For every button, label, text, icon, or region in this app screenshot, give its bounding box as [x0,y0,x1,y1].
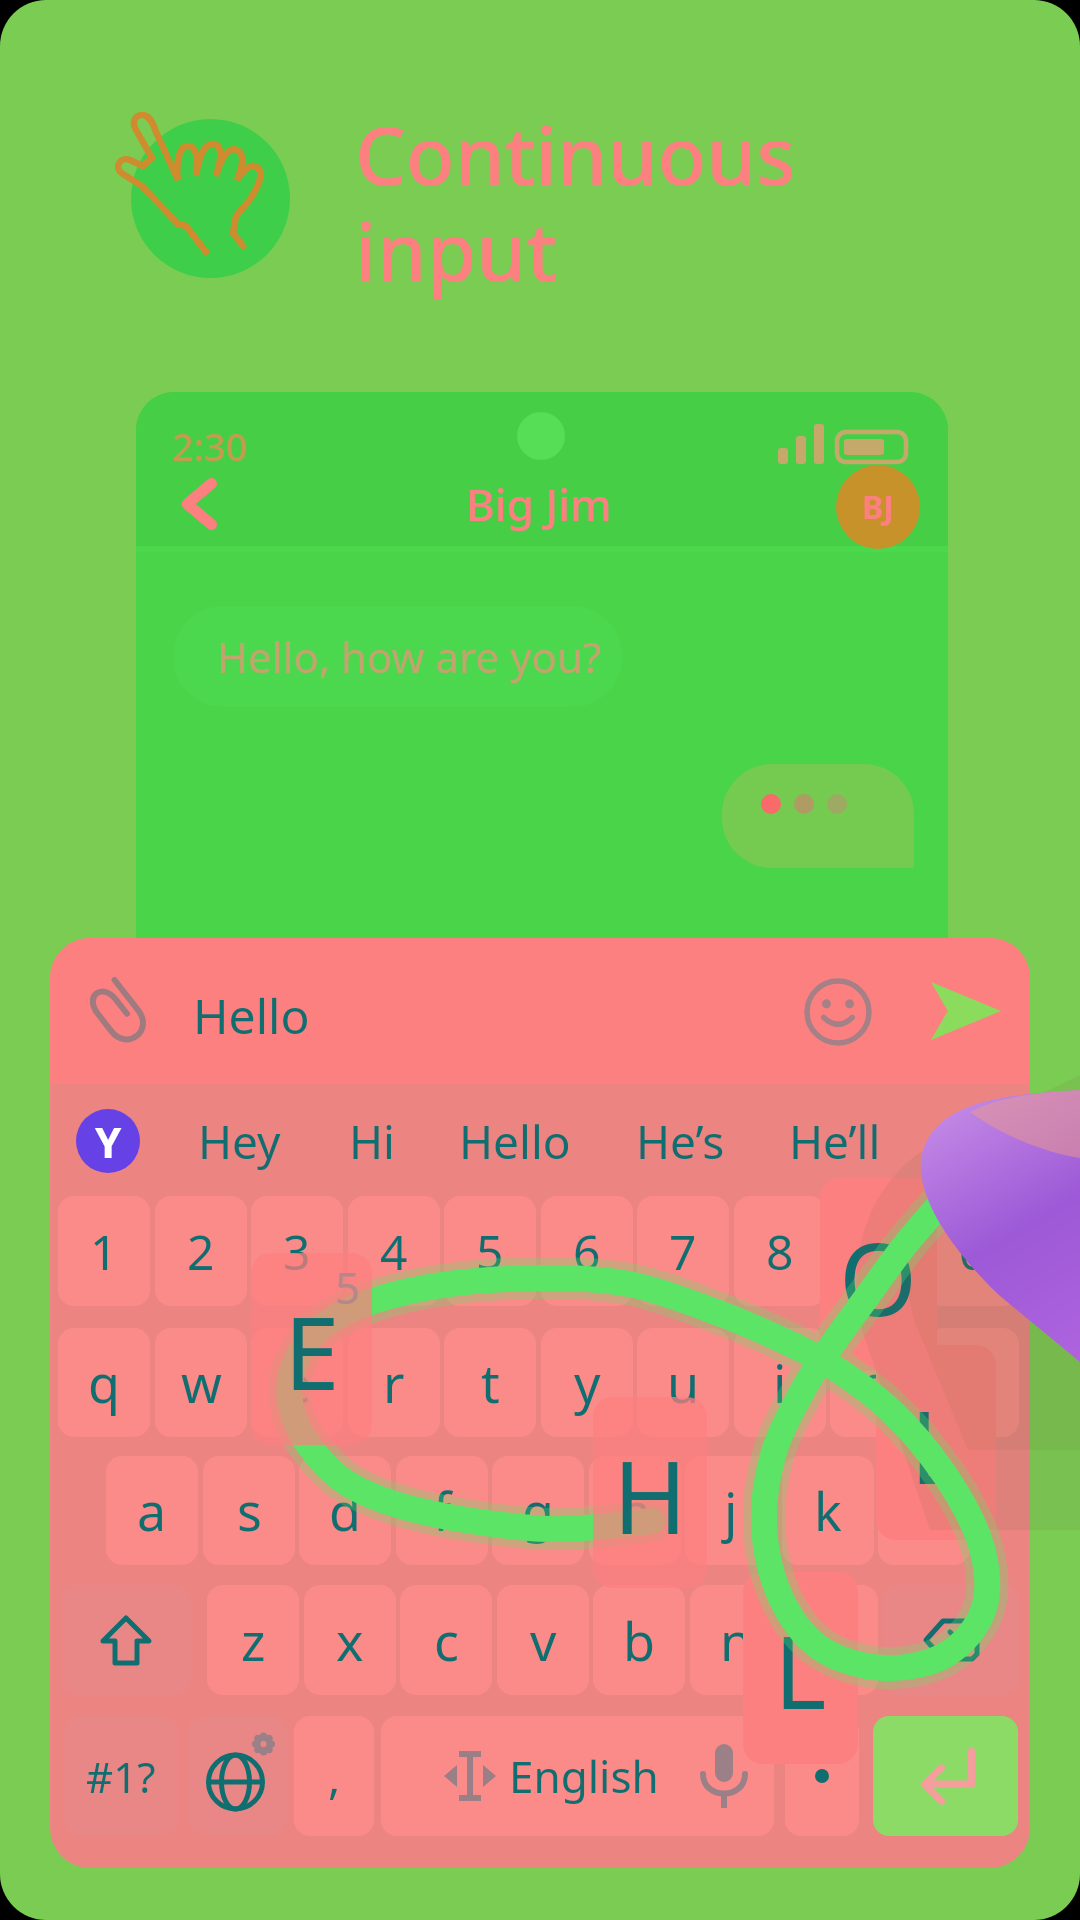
staticText: BJ [862,485,894,529]
staticText: Hello [459,1110,571,1173]
staticText: y [574,1347,601,1418]
staticText: 4 [380,1219,408,1284]
button[interactable]: n [690,1585,782,1695]
staticText: e [282,1347,312,1418]
staticText: 6 [573,1219,601,1284]
staticText: Big Jim [466,474,612,534]
staticText: 3 [283,1219,311,1284]
button[interactable]: Hello [435,1092,595,1190]
staticText: j [724,1475,738,1546]
staticText: o [860,1347,892,1418]
button[interactable]: u [637,1328,729,1437]
button[interactable]: y [541,1328,633,1437]
button[interactable]: BJ [836,465,920,549]
button[interactable]: 7 [637,1196,729,1306]
button[interactable]: Hi [292,1092,452,1190]
button[interactable]: , [294,1716,374,1836]
button[interactable]: 4 [348,1196,440,1306]
staticText: a [137,1475,167,1546]
button[interactable]: 0 [927,1196,1019,1306]
staticText: m [808,1605,857,1676]
staticText: 9 [862,1219,890,1284]
staticText: h [619,1475,652,1546]
staticText: 1 [90,1219,118,1284]
staticText: 5 [476,1219,504,1284]
button[interactable]: h [589,1456,681,1565]
button[interactable]: He’s [600,1092,760,1190]
button[interactable]: l [878,1456,970,1565]
button[interactable]: s [203,1456,295,1565]
button[interactable]: d [299,1456,391,1565]
staticText: 5 [335,1257,361,1317]
button[interactable]: w [155,1328,247,1437]
button[interactable]: Enter [873,1716,1018,1836]
button[interactable]: p [927,1328,1019,1437]
staticText: v [530,1605,557,1676]
button[interactable]: #1? [64,1716,178,1836]
button[interactable]: o [830,1328,922,1437]
staticText: w [181,1347,222,1418]
button[interactable]: Hey [159,1092,319,1190]
staticText: g [522,1475,554,1546]
staticText: 2:30 [172,420,248,472]
staticText: Continuous input [355,99,796,305]
button[interactable]: English [381,1716,774,1836]
staticText: 7 [669,1219,697,1284]
button[interactable]: He’ll [755,1092,915,1190]
button[interactable]: m [786,1585,878,1695]
staticText: 8 [766,1219,794,1284]
staticText: English [509,1746,659,1806]
button[interactable]: e [251,1328,343,1437]
staticText: l [917,1475,931,1546]
button[interactable]: c [400,1585,492,1695]
button[interactable]: z [207,1585,299,1695]
button[interactable]: 8 [734,1196,826,1306]
staticText: 2 [187,1219,215,1284]
staticText: Hello, how are you? [217,628,602,685]
staticText: Hey [198,1110,281,1173]
button[interactable]: Emoji [804,978,872,1046]
staticText: He’s [636,1110,725,1173]
staticText: s [237,1475,262,1546]
button[interactable]: 5 [444,1196,536,1306]
staticText: i [773,1347,787,1418]
staticText: Hi [349,1110,395,1173]
button[interactable]: x [304,1585,396,1695]
button[interactable]: 2 [155,1196,247,1306]
button[interactable]: t [444,1328,536,1437]
staticText: b [623,1605,655,1676]
button[interactable]: g [492,1456,584,1565]
button[interactable]: j [685,1456,777,1565]
button[interactable]: Shift [61,1585,191,1695]
staticText: E [284,1283,340,1419]
staticText: , [328,1745,341,1808]
button[interactable]: v [497,1585,589,1695]
button[interactable]: Backspace [882,1585,1020,1695]
staticText: O [839,1209,918,1345]
button[interactable]: q [58,1328,150,1437]
staticText: 0 [959,1219,987,1284]
button[interactable]: Back [168,472,232,536]
button[interactable]: 3 [251,1196,343,1306]
button[interactable]: Y [76,1109,140,1173]
button[interactable]: r [348,1328,440,1437]
button[interactable]: k [782,1456,874,1565]
button[interactable]: Language [188,1716,287,1836]
button[interactable]: 6 [541,1196,633,1306]
staticText: L [910,1377,963,1513]
staticText: x [336,1605,364,1676]
staticText: n [720,1605,753,1676]
staticText: d [329,1475,361,1546]
button[interactable]: 1 [58,1196,150,1306]
button[interactable]: f [396,1456,488,1565]
button[interactable]: Attach file [80,974,156,1050]
button[interactable]: b [593,1585,685,1695]
staticText: Y [95,1113,122,1170]
button[interactable]: 9 [830,1196,922,1306]
staticText: t [481,1347,500,1418]
button[interactable]: Period [785,1716,859,1836]
button[interactable]: i [734,1328,826,1437]
button[interactable]: a [106,1456,198,1565]
button[interactable]: Send [929,980,1001,1042]
